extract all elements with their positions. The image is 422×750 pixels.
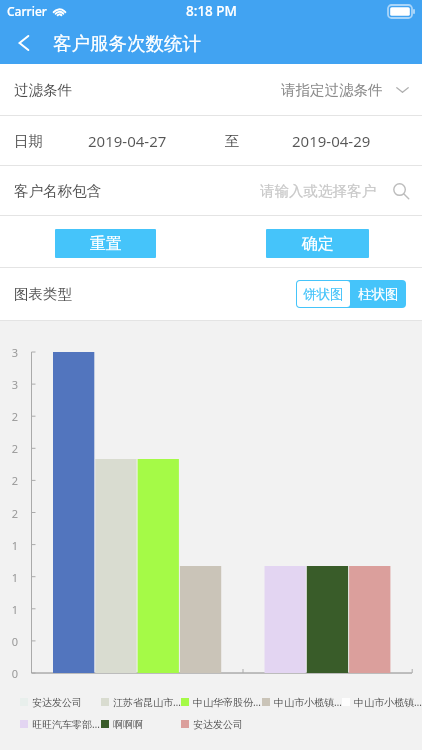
staticText: 2 <box>11 506 18 520</box>
staticText: 啊啊啊 <box>113 718 143 731</box>
staticText: 中山市小榄镇… <box>354 695 422 709</box>
button[interactable]: 2019-04-29 <box>292 131 371 151</box>
button[interactable]: 江苏省昆山市… <box>101 695 181 709</box>
staticText: 请指定过滤条件 <box>281 81 383 99</box>
staticText: 2 <box>11 441 18 455</box>
button[interactable]: 中山市小榄镇… <box>342 695 422 709</box>
staticText: 0 <box>11 666 18 680</box>
button[interactable]: 过滤条件 <box>0 64 422 115</box>
button[interactable]: 柱状图 <box>351 280 406 308</box>
staticText: 中山华帝股份… <box>193 695 261 709</box>
staticText: 至 <box>225 132 240 150</box>
staticText: Carrier <box>7 3 47 19</box>
button[interactable]: 确定 <box>266 229 369 258</box>
staticText: 饼状图 <box>303 286 344 303</box>
staticText: 3 <box>11 377 18 391</box>
button[interactable]: 2019-04-27 <box>88 131 167 151</box>
staticText: 过滤条件 <box>14 81 72 99</box>
staticText: 8:18 PM <box>186 2 237 20</box>
staticText: 客户服务次数统计 <box>53 32 201 55</box>
button[interactable]: 饼状图 <box>297 281 350 307</box>
button[interactable]: Back <box>0 22 46 64</box>
staticText: 0 <box>11 634 18 648</box>
staticText: 1 <box>11 570 18 584</box>
staticText: 安达发公司 <box>32 696 82 709</box>
staticText: 客户名称包含 <box>14 182 101 200</box>
staticText: 图表类型 <box>14 285 72 303</box>
staticText: 安达发公司 <box>193 718 243 731</box>
staticText: 1 <box>11 602 18 616</box>
button[interactable]: 中山华帝股份… <box>181 695 261 709</box>
staticText: 江苏省昆山市… <box>113 695 181 709</box>
button[interactable]: 啊啊啊 <box>101 717 181 731</box>
button[interactable]: 重置 <box>55 229 156 258</box>
staticText: 旺旺汽车零部… <box>32 717 100 731</box>
staticText: 2 <box>11 409 18 423</box>
staticText: 确定 <box>302 234 334 254</box>
button[interactable]: 旺旺汽车零部… <box>20 717 100 731</box>
staticText: 重置 <box>90 234 122 254</box>
staticText: 中山市小榄镇… <box>274 695 342 709</box>
button[interactable]: 中山市小榄镇… <box>262 695 342 709</box>
staticText: 请输入或选择客户 <box>260 182 376 200</box>
button[interactable]: 安达发公司 <box>181 717 261 731</box>
button[interactable]: 客户名称包含 <box>0 166 422 215</box>
button[interactable]: 安达发公司 <box>20 695 100 709</box>
staticText: 3 <box>11 345 18 359</box>
staticText: 柱状图 <box>358 286 399 303</box>
staticText: 2 <box>11 473 18 487</box>
staticText: 1 <box>11 538 18 552</box>
staticText: 日期 <box>14 132 43 150</box>
